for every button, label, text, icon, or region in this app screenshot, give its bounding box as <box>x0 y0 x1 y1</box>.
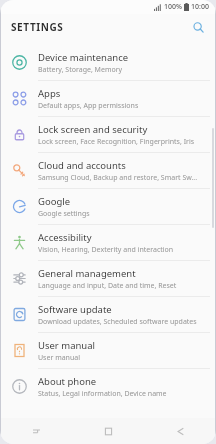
staticText: Samsung Cloud, Backup and restore, Smart… <box>38 173 198 183</box>
staticText: SETTINGS <box>11 20 64 34</box>
staticText: Default apps, App permissions <box>38 101 139 111</box>
button[interactable]: Cloud and accounts <box>0 153 216 188</box>
button[interactable]: About phone <box>0 369 216 404</box>
staticText: Accessibility <box>38 231 92 244</box>
button[interactable]: Recents <box>0 418 72 444</box>
staticText: Cloud and accounts <box>38 159 126 172</box>
staticText: Lock screen and security <box>38 123 148 136</box>
button[interactable]: Google <box>0 189 216 224</box>
staticText: 10:00 <box>191 2 209 12</box>
staticText: Apps <box>38 87 61 100</box>
staticText: Google <box>38 195 71 208</box>
staticText: Google settings <box>38 209 90 219</box>
staticText: User manual <box>38 353 80 363</box>
staticText: General management <box>38 267 136 280</box>
button[interactable]: Home <box>72 418 144 444</box>
button[interactable]: Apps <box>0 81 216 116</box>
staticText: Lock screen, Face Recognition, Fingerpri… <box>38 137 195 147</box>
staticText: Battery, Storage, Memory <box>38 65 123 75</box>
button[interactable]: Search <box>189 18 207 36</box>
button[interactable]: Software update <box>0 297 216 332</box>
button[interactable]: Lock screen and security <box>0 117 216 152</box>
staticText: Software update <box>38 303 112 316</box>
button[interactable]: Accessibility <box>0 225 216 260</box>
staticText: User manual <box>38 339 95 352</box>
staticText: Device maintenance <box>38 51 129 64</box>
staticText: Status, Legal information, Device name <box>38 389 167 399</box>
staticText: Vision, Hearing, Dexterity and interacti… <box>38 245 174 255</box>
staticText: Language and input, Date and time, Reset <box>38 281 177 291</box>
staticText: 100% <box>164 2 182 12</box>
staticText: Download updates, Scheduled software upd… <box>38 317 197 327</box>
button[interactable]: Back <box>144 418 216 444</box>
button[interactable]: User manual <box>0 333 216 368</box>
staticText: About phone <box>38 375 97 388</box>
button[interactable]: Device maintenance <box>0 45 216 80</box>
button[interactable]: General management <box>0 261 216 296</box>
